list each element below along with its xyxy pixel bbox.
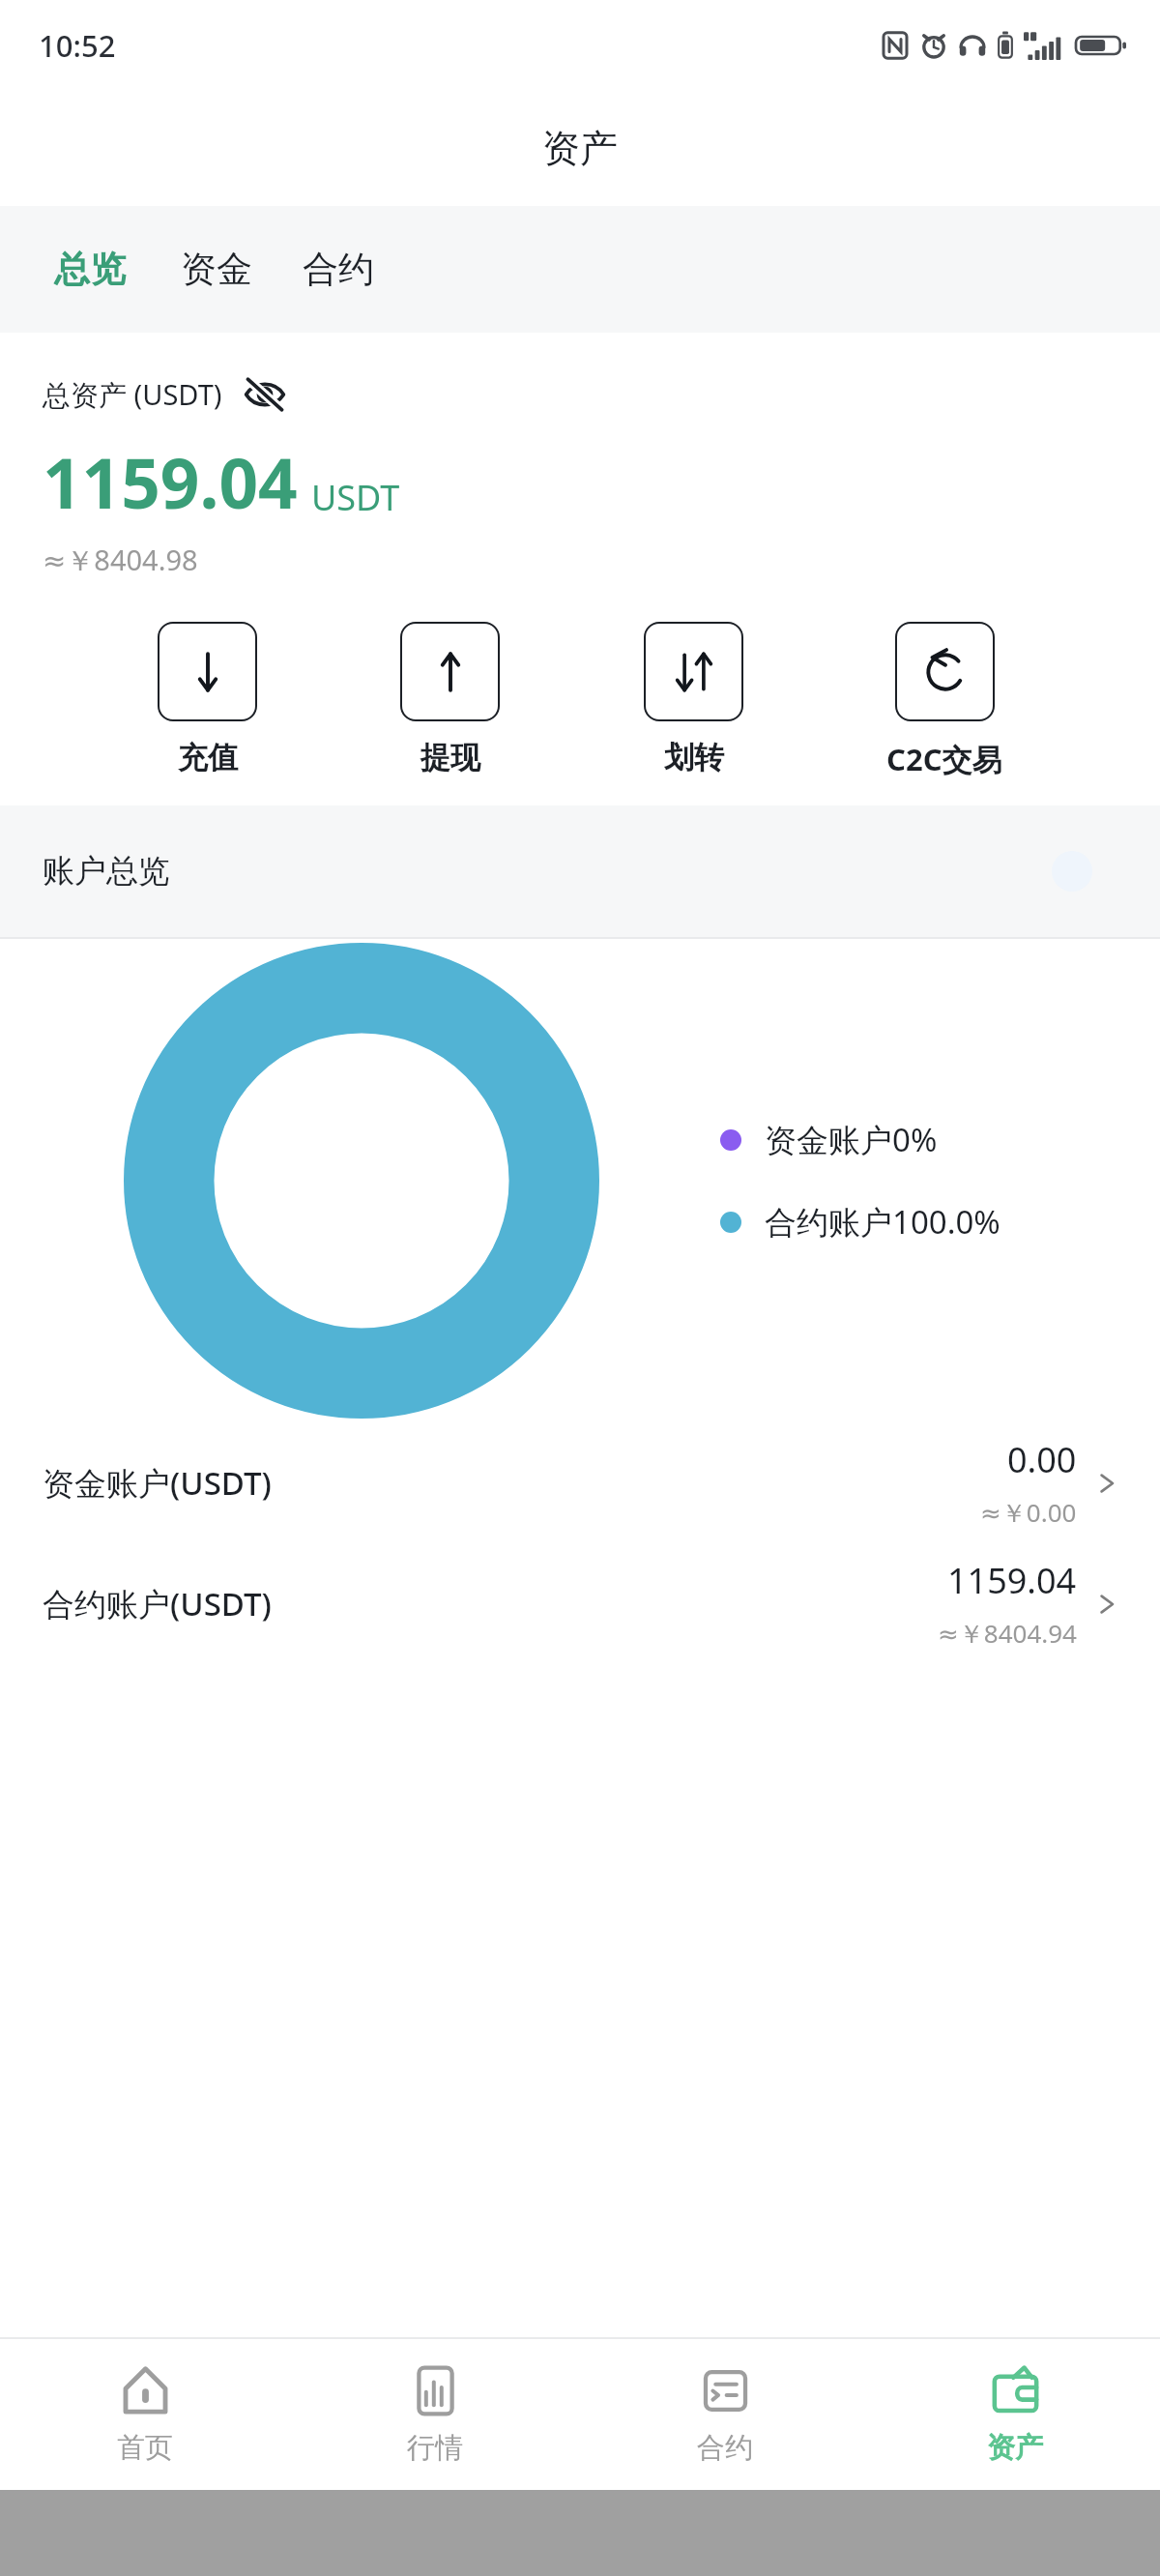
staticText: 0.00: [1007, 1436, 1077, 1483]
button[interactable]: 合约账户(USDT): [0, 1543, 1160, 1664]
button[interactable]: 充值: [150, 622, 265, 776]
staticText: 资产: [987, 2430, 1043, 2466]
button[interactable]: 总览: [54, 237, 126, 302]
staticText: 合约账户(USDT): [43, 1582, 272, 1625]
button[interactable]: 合约: [580, 2339, 870, 2490]
staticText: 资金账户(USDT): [43, 1461, 272, 1505]
staticText: 资金账户0%: [765, 1118, 938, 1161]
button[interactable]: 资金: [181, 237, 252, 302]
button[interactable]: 资产: [870, 2339, 1160, 2490]
button[interactable]: 合约: [303, 237, 374, 302]
staticText: 资产: [542, 125, 618, 172]
staticText: USDT: [311, 474, 400, 521]
button[interactable]: 提现: [392, 622, 507, 776]
button[interactable]: 显示或隐藏余额: [240, 369, 290, 420]
staticText: 1159.04: [947, 1557, 1077, 1604]
button[interactable]: 首页: [0, 2339, 290, 2490]
staticText: 1159.04: [43, 435, 298, 529]
staticText: 合约: [303, 247, 374, 292]
button[interactable]: 行情: [290, 2339, 580, 2490]
staticText: ≈￥8404.98: [43, 541, 198, 579]
staticText: 10:52: [39, 25, 116, 66]
staticText: 合约: [697, 2430, 753, 2466]
staticText: 行情: [407, 2430, 463, 2466]
button[interactable]: C2C交易: [879, 622, 1010, 779]
staticText: 总览: [54, 247, 126, 292]
staticText: 账户总览: [43, 851, 170, 892]
staticText: 提现: [420, 739, 480, 776]
button[interactable]: 资金账户(USDT): [0, 1422, 1160, 1543]
staticText: ≈￥0.00: [980, 1495, 1077, 1530]
button[interactable]: 划转: [636, 622, 751, 776]
staticText: 划转: [664, 739, 724, 776]
staticText: 充值: [178, 739, 238, 776]
staticText: 资金: [181, 247, 252, 292]
staticText: 首页: [117, 2430, 173, 2466]
staticText: ≈￥8404.94: [938, 1616, 1077, 1651]
staticText: C2C交易: [886, 739, 1002, 779]
staticText: 总资产 (USDT): [43, 375, 222, 414]
staticText: 合约账户100.0%: [765, 1200, 1000, 1244]
